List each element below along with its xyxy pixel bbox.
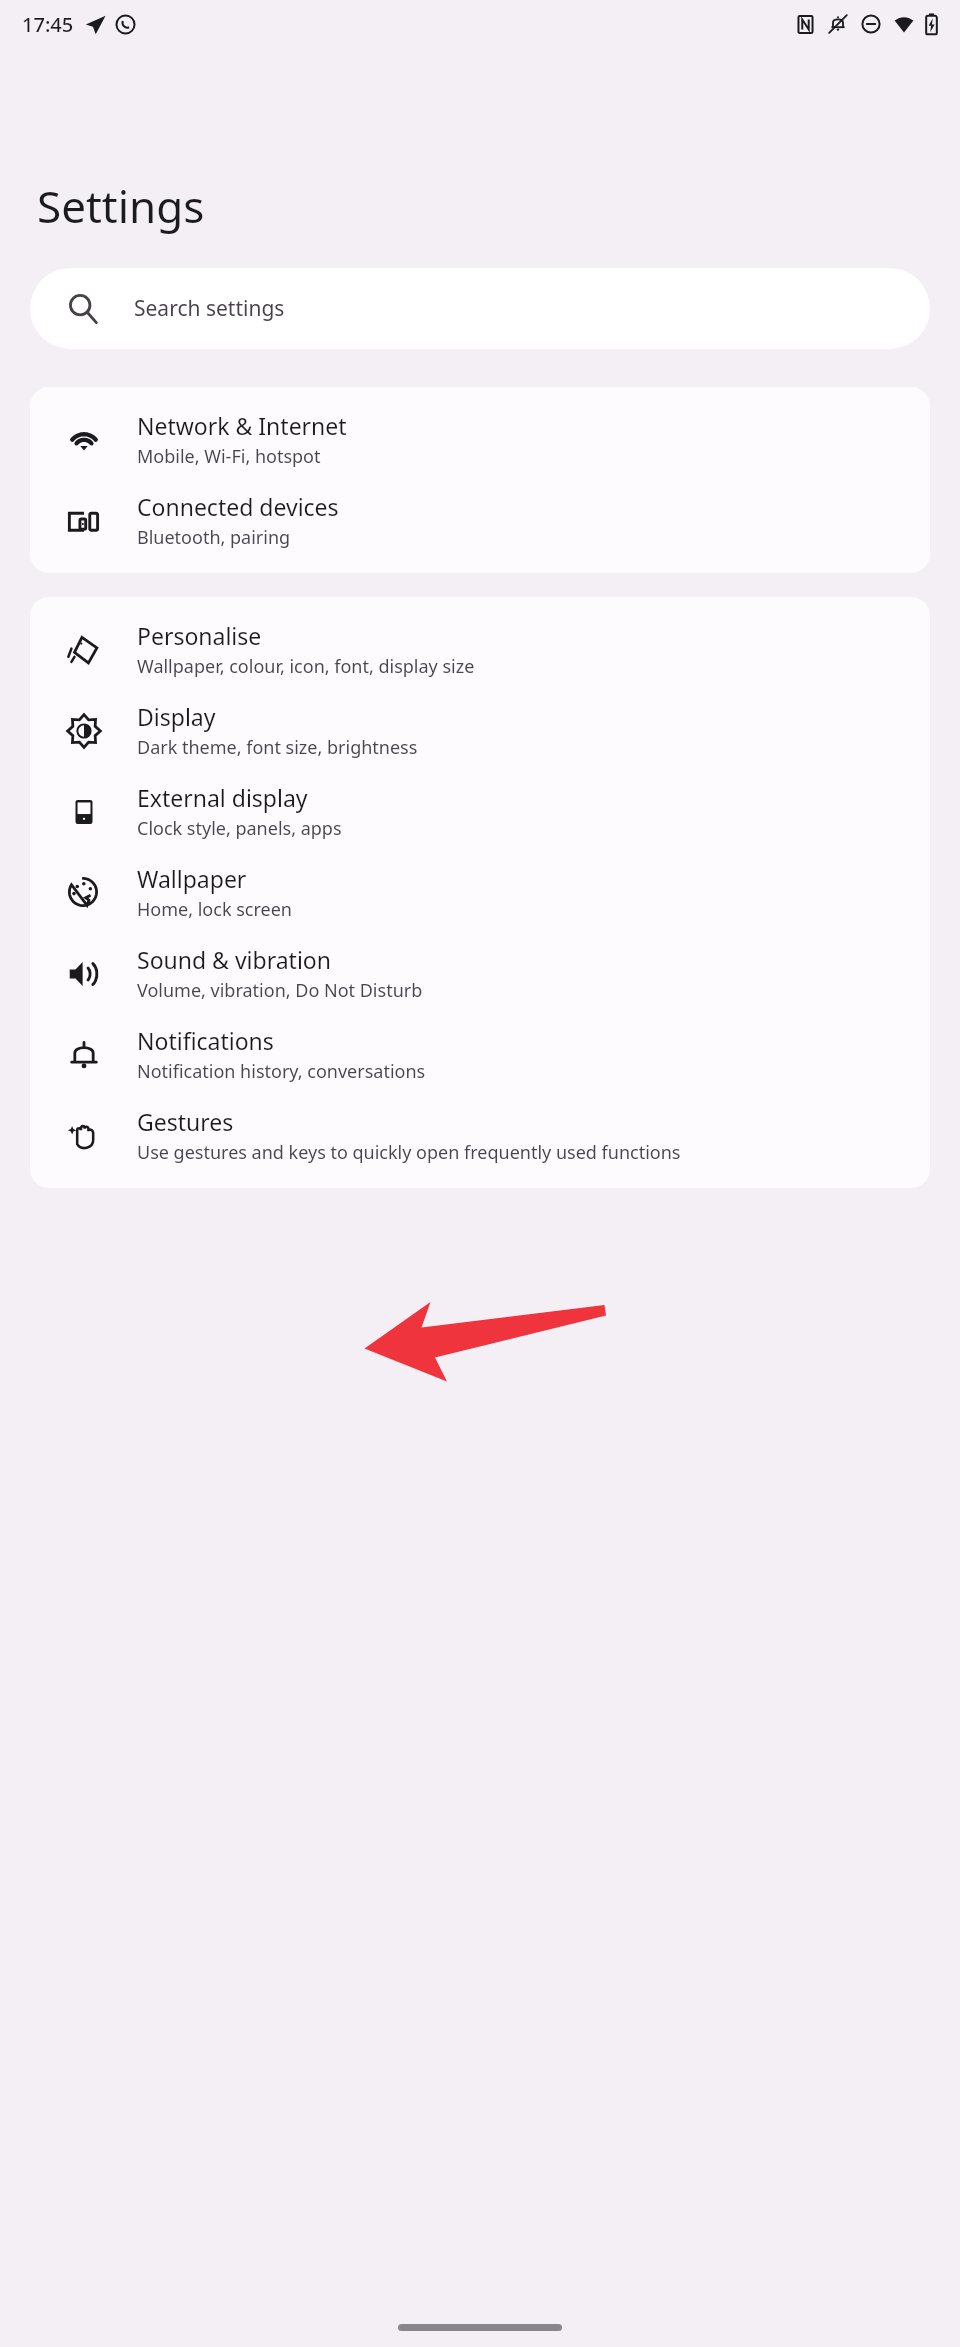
staticText: Home, lock screen [137,897,292,922]
other: Notifications silenced [828,14,848,34]
other: Telegram [85,14,106,35]
staticText: Connected devices [137,491,339,522]
staticText: Bluetooth, pairing [137,525,291,550]
staticText: Notifications [137,1025,274,1056]
staticText: 17:45 [22,11,74,38]
button[interactable]: Display [30,690,930,771]
staticText: Sound & vibration [137,944,331,975]
staticText: External display [137,782,308,813]
staticText: Use gestures and keys to quickly open fr… [137,1140,681,1165]
button[interactable]: Search settings [30,268,930,349]
other: Do not disturb [861,14,881,34]
button[interactable]: Wallpaper [30,852,930,933]
other: Wi-Fi [894,14,914,34]
button[interactable]: Personalise [30,609,930,690]
staticText: Search settings [134,294,285,323]
staticText: Mobile, Wi-Fi, hotspot [137,444,321,469]
staticText: Clock style, panels, apps [137,816,342,841]
staticText: Settings [37,176,205,236]
other: WhatsApp [115,14,136,35]
staticText: Notification history, conversations [137,1059,426,1084]
staticText: Gestures [137,1106,234,1137]
staticText: Personalise [137,620,262,651]
other: NFC [796,15,815,34]
staticText: Network & Internet [137,410,347,441]
button[interactable]: Connected devices [30,480,930,561]
staticText: Display [137,701,216,732]
button[interactable]: Gestures [30,1095,930,1176]
staticText: Wallpaper, colour, icon, font, display s… [137,654,475,679]
staticText: Dark theme, font size, brightness [137,735,418,760]
button[interactable]: Network & Internet [30,399,930,480]
staticText: Volume, vibration, Do Not Disturb [137,978,423,1003]
staticText: Wallpaper [137,863,247,894]
button[interactable]: Sound & vibration [30,933,930,1014]
other: Battery charging [925,13,938,35]
button[interactable]: Notifications [30,1014,930,1095]
button[interactable]: External display [30,771,930,852]
